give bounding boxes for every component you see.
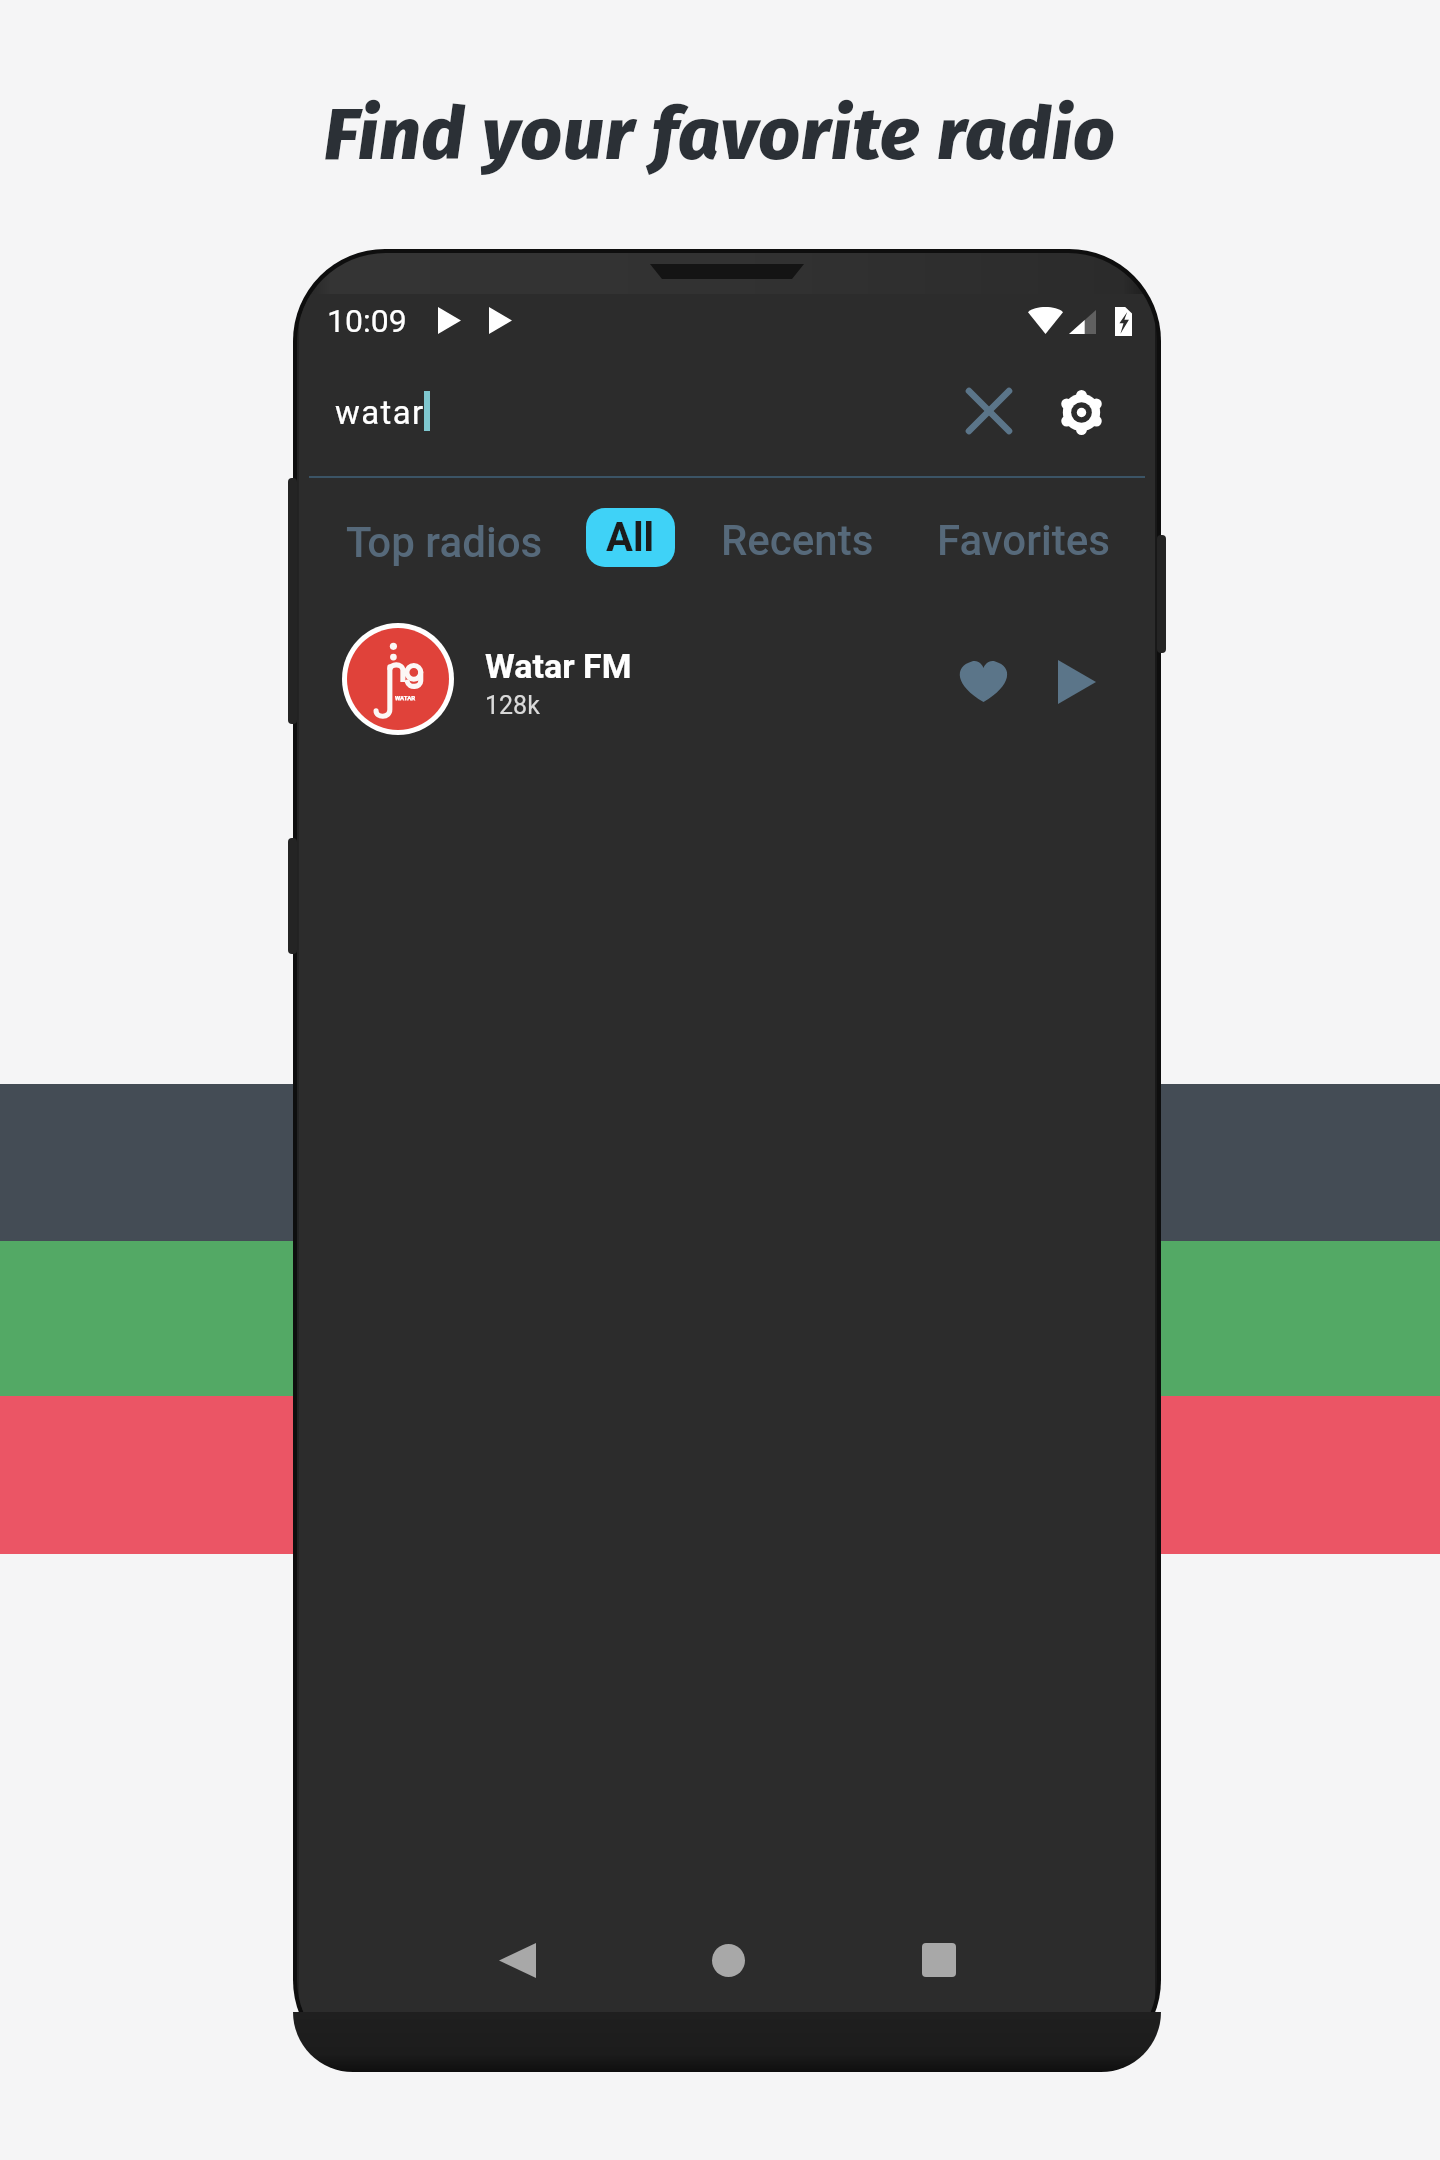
button[interactable]: Back <box>481 1924 553 1996</box>
staticText: Watar FM <box>485 646 632 686</box>
button[interactable]: Favorite <box>942 640 1024 722</box>
button[interactable]: Settings <box>1045 376 1117 448</box>
button[interactable] <box>299 604 1155 756</box>
staticText: 128k <box>485 691 540 720</box>
button[interactable]: Favorites <box>937 516 1110 565</box>
button[interactable]: Top radios <box>346 518 543 567</box>
button[interactable]: Home <box>692 1924 764 1996</box>
staticText: Top radios <box>346 518 543 567</box>
staticText: Recents <box>721 516 874 565</box>
staticText: watar <box>335 393 425 432</box>
staticText: WATAR <box>395 694 416 701</box>
button[interactable]: All <box>586 508 675 567</box>
staticText: Find your favorite radio <box>0 91 1440 179</box>
button[interactable]: Recents <box>721 516 874 565</box>
staticText: All <box>606 514 655 561</box>
staticText: Favorites <box>937 516 1110 565</box>
button[interactable]: Play <box>1036 641 1118 723</box>
button[interactable]: Clear search <box>953 375 1025 447</box>
staticText: 10:09 <box>327 302 407 340</box>
button[interactable]: Recent apps <box>903 1924 975 1996</box>
